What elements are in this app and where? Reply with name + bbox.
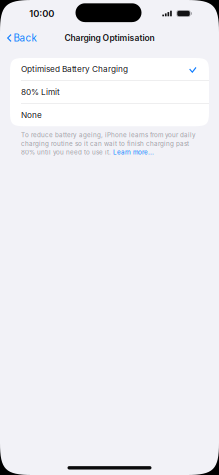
button[interactable]: None bbox=[10, 104, 209, 126]
staticText: Learn more... bbox=[113, 148, 154, 156]
staticText: 10:00 bbox=[29, 8, 54, 19]
staticText: None bbox=[21, 110, 42, 120]
button[interactable]: 80% Limit bbox=[10, 81, 209, 104]
staticText: Back bbox=[14, 32, 37, 44]
staticText: To reduce battery ageing, iPhone learns … bbox=[21, 131, 196, 139]
staticText: Optimised Battery Charging bbox=[21, 64, 128, 74]
staticText: charging routine so it can wait to finis… bbox=[21, 140, 189, 147]
staticText: Charging Optimisation bbox=[64, 33, 154, 43]
button[interactable]: Back bbox=[0, 29, 37, 47]
staticText: 80% until you need to use it. bbox=[21, 148, 113, 156]
staticText: 80% Limit bbox=[21, 87, 60, 97]
button[interactable]: Learn more... bbox=[113, 148, 154, 156]
button[interactable]: Optimised Battery Charging bbox=[10, 58, 209, 81]
